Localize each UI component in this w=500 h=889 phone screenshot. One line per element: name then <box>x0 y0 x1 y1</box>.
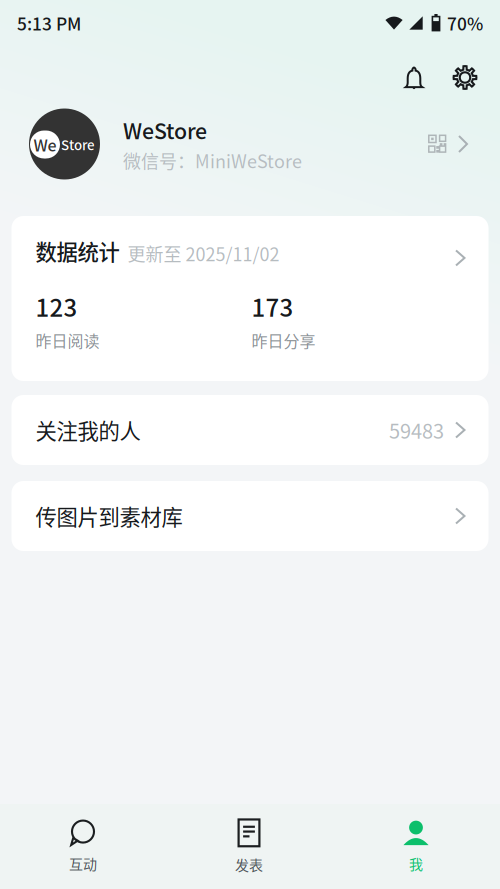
staticText: 微信号：MiniWeStore <box>123 147 302 173</box>
staticText: 123 <box>35 289 77 324</box>
staticText: 我 <box>409 853 423 874</box>
button[interactable]: 数据统计 <box>11 216 488 381</box>
staticText: 发表 <box>235 854 263 875</box>
button[interactable]: 关注我的人 <box>11 395 488 465</box>
staticText: 互动 <box>69 853 97 874</box>
button[interactable]: 发表 <box>166 804 332 889</box>
staticText: 昨日分享 <box>251 329 315 352</box>
button[interactable]: Settings <box>441 65 489 91</box>
staticText: 70% <box>447 10 483 36</box>
staticText: Store <box>61 135 95 154</box>
staticText: 173 <box>251 289 293 324</box>
button[interactable]: 我 <box>332 804 500 889</box>
staticText: 昨日阅读 <box>35 329 99 352</box>
staticText: 关注我的人 <box>35 415 140 445</box>
button[interactable]: Notifications <box>390 65 438 91</box>
staticText: 更新至 2025/11/02 <box>127 240 279 266</box>
button[interactable]: We <box>0 104 500 216</box>
staticText: We <box>33 133 56 156</box>
staticText: 59483 <box>389 415 444 444</box>
button[interactable]: 传图片到素材库 <box>11 481 488 551</box>
staticText: 传图片到素材库 <box>35 501 182 531</box>
staticText: 5:13 PM <box>17 10 81 36</box>
staticText: WeStore <box>123 114 207 145</box>
button[interactable]: 互动 <box>0 804 166 889</box>
staticText: 数据统计 <box>35 236 119 266</box>
